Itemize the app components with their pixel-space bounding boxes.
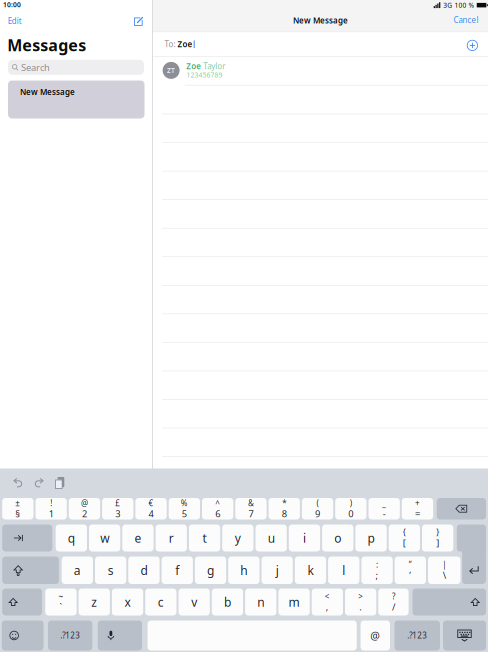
button[interactable]: h (228, 556, 259, 584)
button[interactable] (443, 620, 486, 650)
button[interactable]: Undo (12, 477, 23, 488)
button[interactable]: + (402, 498, 433, 519)
button[interactable] (148, 620, 357, 650)
button[interactable]: p (355, 524, 387, 551)
button[interactable]: & (235, 498, 267, 519)
staticText: % (181, 498, 188, 508)
staticText: \ (443, 569, 446, 581)
button[interactable]: ± (2, 498, 33, 519)
button[interactable] (412, 588, 486, 615)
button[interactable]: * (269, 498, 300, 519)
staticText: v (191, 594, 197, 610)
staticText: ] (436, 537, 439, 549)
button[interactable]: Paste (54, 477, 65, 488)
staticText: ZT (167, 66, 175, 75)
button[interactable]: % (169, 498, 200, 519)
button[interactable]: e (122, 524, 154, 551)
button[interactable]: ^ (202, 498, 233, 519)
staticText: ! (50, 498, 52, 508)
button[interactable]: g (195, 556, 226, 584)
staticText: e (134, 530, 141, 546)
staticText: 1 (49, 507, 54, 520)
button[interactable]: ” (395, 556, 426, 584)
button[interactable]: x (112, 588, 143, 615)
button[interactable] (437, 498, 486, 519)
button[interactable]: ? (378, 588, 409, 615)
button[interactable]: a (62, 556, 93, 584)
button[interactable]: { (389, 524, 420, 551)
button[interactable] (2, 524, 52, 551)
button[interactable]: j (261, 556, 293, 584)
button[interactable]: d (128, 556, 160, 584)
button[interactable] (2, 620, 43, 650)
button[interactable]: .?123 (48, 620, 92, 650)
button[interactable]: £ (102, 498, 133, 519)
staticText: 5 (182, 507, 187, 520)
button[interactable]: Redo (33, 477, 44, 488)
staticText: ( (316, 498, 318, 508)
button[interactable]: m (278, 588, 310, 615)
button[interactable]: @ (361, 620, 390, 650)
staticText: j (276, 562, 279, 578)
button[interactable]: f (162, 556, 193, 584)
button[interactable] (98, 620, 142, 650)
button[interactable] (2, 556, 59, 584)
button[interactable]: n (245, 588, 276, 615)
staticText: Cancel (453, 15, 478, 25)
button[interactable]: ~ (45, 588, 77, 615)
button[interactable]: > (345, 588, 376, 615)
button[interactable]: .?123 (394, 620, 440, 650)
button[interactable]: ZT (153, 57, 488, 85)
button[interactable]: t (189, 524, 220, 551)
button[interactable] (2, 588, 42, 615)
staticText: 123456789 (186, 71, 222, 79)
button[interactable]: i (289, 524, 320, 551)
button[interactable]: New Message (133, 16, 144, 27)
staticText: 4 (148, 507, 153, 520)
button[interactable]: v (178, 588, 210, 615)
button[interactable]: o (322, 524, 353, 551)
button[interactable]: : (361, 556, 393, 584)
staticText: s (108, 562, 114, 578)
staticText: / (392, 601, 395, 613)
button[interactable]: s (95, 556, 126, 584)
button[interactable]: New Message (8, 80, 144, 118)
staticText: b (224, 594, 231, 610)
button[interactable]: z (79, 588, 110, 615)
staticText (175, 40, 177, 49)
button[interactable]: y (222, 524, 253, 551)
button[interactable]: ( (302, 498, 333, 519)
button[interactable]: } (422, 524, 453, 551)
staticText: | (442, 559, 446, 570)
button[interactable]: | (428, 556, 460, 584)
staticText: ` (59, 601, 62, 613)
staticText: § (15, 507, 20, 520)
button[interactable]: € (135, 498, 167, 519)
button[interactable]: l (328, 556, 359, 584)
button[interactable]: b (212, 588, 243, 615)
button[interactable]: ! (35, 498, 67, 519)
staticText: ’ (409, 569, 411, 581)
staticText: 6 (215, 507, 220, 520)
button[interactable]: r (156, 524, 187, 551)
button[interactable]: Add contact (466, 39, 478, 51)
button[interactable]: @ (69, 498, 100, 519)
staticText: 10:00 (3, 0, 21, 9)
button[interactable]: Cancel (452, 14, 478, 25)
button[interactable]: Return (0, 0, 488, 652)
staticText: 100 % (454, 1, 474, 10)
staticText: a (74, 562, 81, 578)
button[interactable]: c (145, 588, 176, 615)
button[interactable]: ) (335, 498, 366, 519)
staticText: 9 (315, 507, 320, 520)
button[interactable]: k (295, 556, 326, 584)
button[interactable]: u (255, 524, 287, 551)
button[interactable]: q (56, 524, 87, 551)
staticText: c (158, 594, 164, 610)
staticText: n (257, 594, 264, 610)
staticText: .?123 (407, 630, 427, 641)
button[interactable]: < (312, 588, 343, 615)
button[interactable]: _ (368, 498, 400, 519)
button[interactable]: Edit (5, 15, 27, 26)
button[interactable]: w (89, 524, 120, 551)
